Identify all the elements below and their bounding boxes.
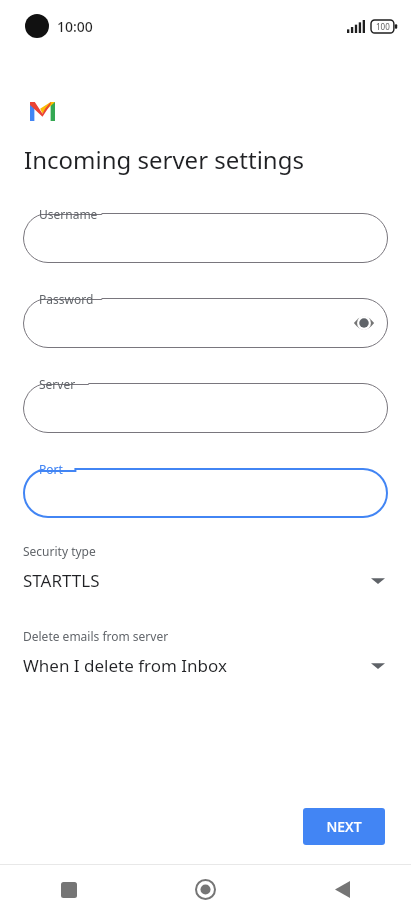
staticText: 100 (376, 21, 390, 32)
button[interactable]: Home (137, 865, 274, 914)
button[interactable]: Server (23, 369, 388, 433)
button[interactable]: NEXT (303, 808, 385, 845)
staticText: When I delete from Inbox (23, 654, 371, 677)
staticText: Security type (23, 543, 96, 559)
button[interactable]: Password (23, 284, 388, 348)
staticText: Password (39, 291, 94, 307)
staticText: Delete emails from server (23, 628, 169, 644)
staticText: Incoming server settings (24, 143, 304, 176)
staticText: 10:00 (57, 17, 93, 36)
button[interactable]: Port (23, 454, 388, 518)
button[interactable]: Recent apps (0, 865, 137, 914)
button[interactable]: Back (274, 865, 411, 914)
staticText: Server (39, 376, 76, 392)
staticText: Username (39, 206, 98, 222)
staticText: STARTTLS (23, 569, 371, 592)
button[interactable]: Security type (23, 541, 388, 594)
button[interactable]: Username (23, 199, 388, 263)
button[interactable]: Delete emails from server (23, 626, 388, 679)
button[interactable]: Show password (352, 311, 376, 335)
staticText: NEXT (326, 817, 362, 836)
staticText: Port (39, 461, 63, 477)
